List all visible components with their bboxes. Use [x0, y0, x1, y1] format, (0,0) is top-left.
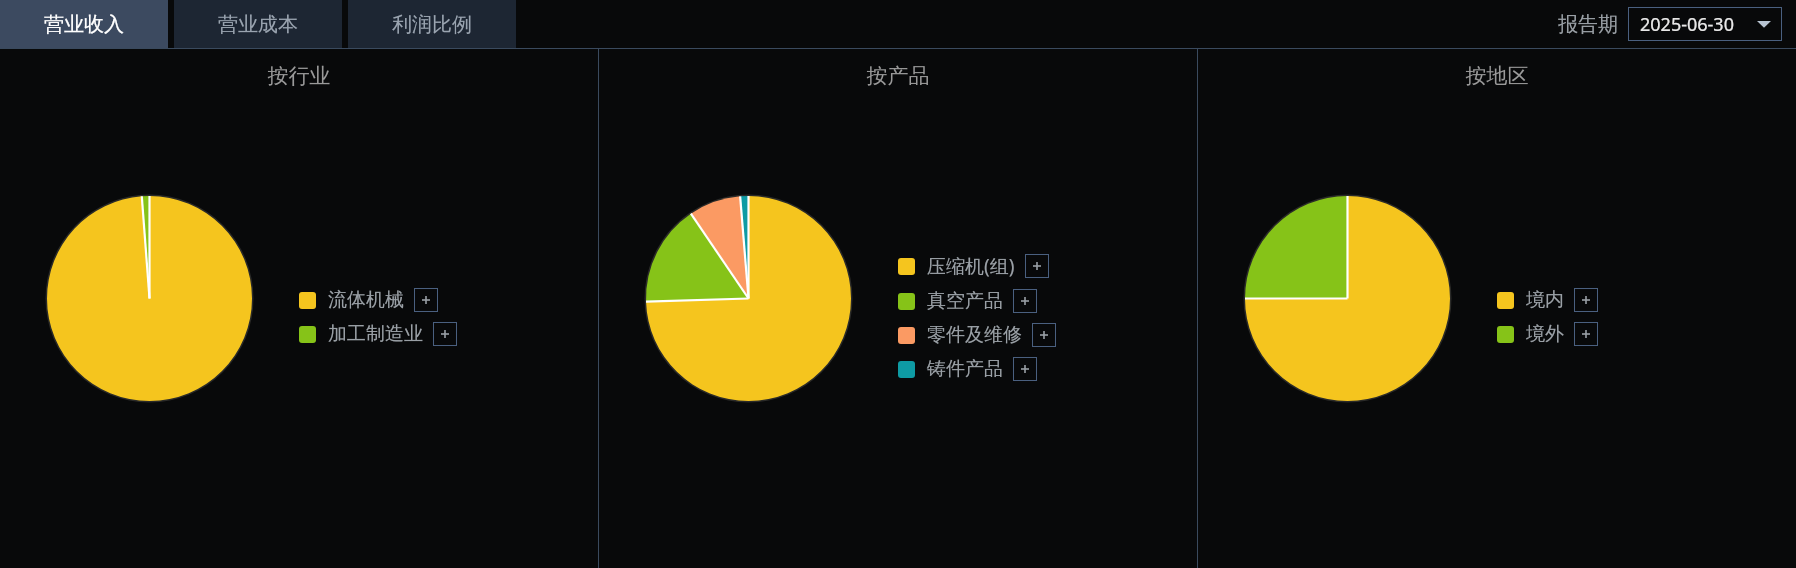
- button[interactable]: 流体机械: [299, 288, 438, 312]
- staticText: 压缩机(组): [927, 253, 1015, 279]
- staticText: 铸件产品: [927, 357, 1003, 381]
- button[interactable]: 展开明细: [1013, 289, 1037, 313]
- staticText: 营业成本: [218, 12, 298, 37]
- button[interactable]: 零件及维修: [898, 323, 1056, 347]
- staticText: 境内: [1526, 288, 1564, 312]
- button[interactable]: 展开明细: [433, 322, 457, 346]
- other: 选择报告期: [1756, 16, 1772, 32]
- button[interactable]: 2025-06-30: [1628, 7, 1782, 41]
- staticText: 2025-06-30: [1640, 12, 1734, 37]
- staticText: 按行业: [0, 63, 598, 89]
- button[interactable]: 营业收入: [0, 0, 168, 48]
- button[interactable]: 展开明细: [1574, 322, 1598, 346]
- button[interactable]: 营业成本: [174, 0, 342, 48]
- button[interactable]: 境外: [1497, 322, 1598, 346]
- button[interactable]: 展开明细: [1013, 357, 1037, 381]
- staticText: 利润比例: [392, 12, 472, 37]
- staticText: 加工制造业: [328, 322, 423, 346]
- button[interactable]: 境内: [1497, 288, 1598, 312]
- staticText: 境外: [1526, 322, 1564, 346]
- button[interactable]: 展开明细: [1574, 288, 1598, 312]
- button[interactable]: 展开明细: [1025, 254, 1049, 278]
- staticText: 真空产品: [927, 289, 1003, 313]
- button[interactable]: 展开明细: [1032, 323, 1056, 347]
- button[interactable]: 铸件产品: [898, 357, 1037, 381]
- staticText: 按产品: [599, 63, 1197, 89]
- button[interactable]: 加工制造业: [299, 322, 457, 346]
- staticText: 按地区: [1198, 63, 1796, 89]
- button[interactable]: 展开明细: [414, 288, 438, 312]
- button[interactable]: 利润比例: [348, 0, 516, 48]
- staticText: 零件及维修: [927, 323, 1022, 347]
- staticText: 营业收入: [44, 12, 124, 37]
- button[interactable]: 真空产品: [898, 289, 1037, 313]
- staticText: 流体机械: [328, 288, 404, 312]
- button[interactable]: 压缩机(组): [898, 253, 1049, 279]
- staticText: 报告期: [1558, 12, 1618, 37]
